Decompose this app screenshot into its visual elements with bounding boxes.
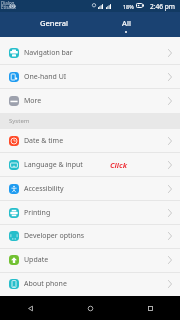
staticText: Accessibility [24, 184, 64, 194]
staticText: System [9, 117, 30, 125]
button[interactable]: Accessibility [0, 177, 180, 201]
button[interactable]: Navigation bar [0, 41, 180, 65]
staticText: About phone [24, 279, 67, 289]
button[interactable]: Printing [0, 201, 180, 225]
staticText: One-hand UI [24, 72, 67, 82]
button[interactable]: Back [0, 296, 60, 320]
button[interactable]: Recent apps [120, 296, 180, 320]
button[interactable]: Language & input [0, 153, 180, 177]
staticText: Click [110, 160, 127, 170]
button[interactable]: All [90, 12, 162, 37]
staticText: More [24, 96, 42, 106]
button[interactable]: One-hand UI [0, 65, 180, 89]
staticText: All [122, 18, 131, 28]
button[interactable]: General [18, 12, 90, 37]
staticText: Update [24, 255, 49, 265]
staticText: Language & input [24, 160, 83, 170]
button[interactable]: About phone [0, 272, 180, 296]
button[interactable]: Developer options [0, 224, 180, 248]
staticText: 2:46 pm [150, 2, 176, 11]
button[interactable]: Home [60, 296, 120, 320]
staticText: 18% [123, 3, 134, 10]
button[interactable]: Update [0, 248, 180, 272]
staticText: General [40, 18, 68, 28]
button[interactable]: Date & time [0, 129, 180, 153]
staticText: Printing [24, 208, 51, 218]
staticText: Date & time [24, 136, 64, 146]
staticText: Navigation bar [24, 48, 73, 58]
staticText: Dialog [1, 0, 15, 6]
staticText: Developer options [24, 231, 85, 241]
staticText: Etisalat [1, 4, 16, 10]
button[interactable]: More [0, 89, 180, 113]
